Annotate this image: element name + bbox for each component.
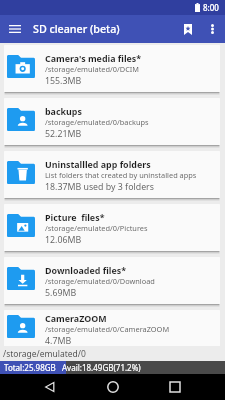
staticText: Camera's media files* <box>45 52 142 64</box>
staticText: /storage/emulated/0/CameraZOOM <box>45 324 170 334</box>
staticText: 18.37MB used by 3 folders <box>45 181 154 193</box>
staticText: /storage/emulated/0/Pictures <box>45 223 148 233</box>
button[interactable]: backups <box>4 98 220 145</box>
button[interactable]: Bookmark <box>176 15 199 43</box>
button[interactable]: CameraZOOM <box>4 310 220 346</box>
staticText: CameraZOOM <box>45 312 107 324</box>
button[interactable]: Menu <box>0 15 30 43</box>
staticText: /storage/emulated/0/DCIM <box>45 64 140 74</box>
button[interactable]: Downloaded files* <box>4 257 220 304</box>
staticText: Uninstallled app folders <box>45 158 151 170</box>
staticText: SD cleaner (beta) <box>33 22 120 37</box>
staticText: /storage/emulated/0 <box>3 348 86 360</box>
button[interactable]: Recents <box>162 374 188 400</box>
button[interactable]: Uninstallled app folders <box>4 151 220 198</box>
button[interactable]: Back <box>37 374 63 400</box>
staticText: 12.06MB <box>45 234 82 246</box>
staticText: 4.7MB <box>45 335 72 346</box>
staticText: /storage/emulated/0/Download <box>45 276 155 286</box>
staticText: backups <box>45 105 82 117</box>
staticText: Total:25.98GB <box>4 362 56 373</box>
button[interactable]: Picture files* <box>4 204 220 251</box>
button[interactable]: More options <box>205 15 219 43</box>
button[interactable]: Home <box>100 374 126 400</box>
staticText: 5.69MB <box>45 287 77 299</box>
staticText: 155.3MB <box>45 75 82 87</box>
staticText: /storage/emulated/0/backups <box>45 117 149 127</box>
staticText: 52.21MB <box>45 128 82 140</box>
staticText: List folders that created by uninstalled… <box>45 170 197 180</box>
staticText: Downloaded files* <box>45 264 126 276</box>
staticText: 8:00 <box>203 2 219 13</box>
staticText: Picture files* <box>45 211 105 223</box>
staticText: Avail:18.49GB(71.2%) <box>62 362 141 373</box>
button[interactable]: Camera's media files* <box>4 45 220 92</box>
